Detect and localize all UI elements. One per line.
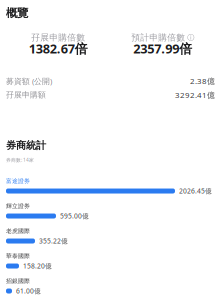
staticText: 預計申購倍數: [131, 32, 185, 43]
staticText: 富途證券: [6, 177, 30, 185]
staticText: 3292.41億: [175, 90, 215, 100]
button[interactable]: 富途證券: [6, 178, 215, 194]
button[interactable]: 招銀國際: [6, 278, 215, 294]
staticText: 券商統計: [6, 139, 46, 152]
staticText: 孖展申購倍數: [31, 32, 85, 43]
staticText: 老虎國際: [6, 227, 30, 235]
staticText: 輝立證券: [6, 202, 30, 210]
staticText: 華泰國際: [6, 252, 30, 260]
staticText: 2026.45億: [179, 186, 212, 196]
button[interactable]: 華泰國際: [6, 253, 215, 269]
staticText: 概覽: [6, 6, 28, 20]
staticText: ⓘ: [187, 33, 194, 42]
staticText: 募資額 (公開): [6, 76, 52, 86]
button[interactable]: 預計申購倍數 說明: [131, 33, 194, 42]
button[interactable]: 老虎國際: [6, 228, 215, 244]
staticText: 券商數: 14家: [6, 157, 34, 163]
staticText: 2.38億: [190, 76, 215, 86]
staticText: 2357.99倍: [133, 40, 192, 57]
staticText: 招銀國際: [6, 277, 30, 285]
staticText: 595.00億: [60, 211, 89, 221]
staticText: 1382.67倍: [29, 40, 88, 57]
staticText: 158.20億: [23, 261, 52, 271]
staticText: 61.00億: [16, 286, 41, 296]
button[interactable]: 輝立證券: [6, 203, 215, 219]
staticText: 孖展申購額: [6, 90, 46, 100]
staticText: 355.22億: [39, 236, 68, 246]
